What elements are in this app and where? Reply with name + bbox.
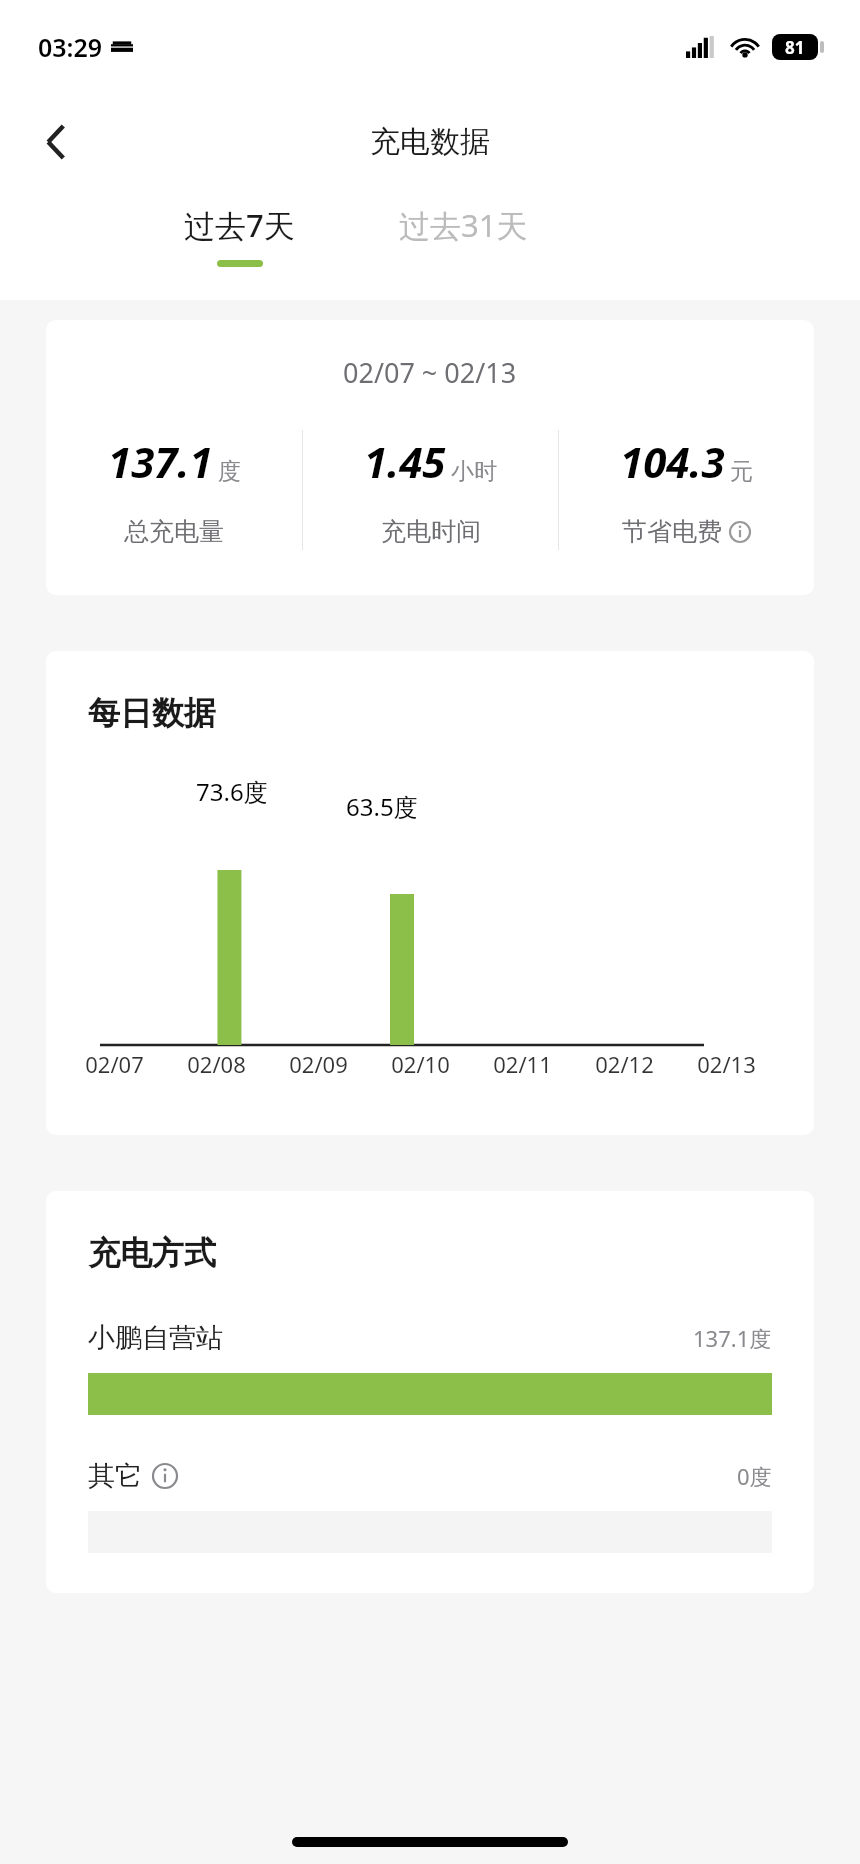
staticText: 137.1 — [108, 433, 213, 490]
staticText: 充电方式 — [88, 1233, 216, 1273]
button[interactable]: 02/07 ~ 02/13 — [46, 320, 814, 595]
staticText: 02/10 — [391, 1049, 450, 1079]
staticText: 每日数据 — [88, 693, 216, 733]
staticText: 02/07 — [85, 1049, 144, 1079]
staticText: 81 — [785, 36, 805, 59]
staticText: 02/12 — [595, 1049, 654, 1079]
staticText: 小时 — [451, 457, 497, 486]
staticText: 02/08 — [187, 1049, 246, 1079]
staticText: 73.6度 — [196, 775, 268, 808]
staticText: 小鹏自营站 — [88, 1321, 223, 1355]
staticText: 节省电费 — [622, 516, 722, 547]
staticText: 02/11 — [493, 1049, 552, 1079]
staticText: 总充电量 — [124, 516, 224, 547]
button[interactable]: Info — [152, 1463, 178, 1489]
staticText: 充电时间 — [381, 516, 481, 547]
staticText: 过去31天 — [399, 204, 528, 246]
button[interactable]: 过去7天 — [170, 204, 309, 267]
staticText: 02/07 ~ 02/13 — [343, 354, 517, 391]
staticText: 02/13 — [697, 1049, 756, 1079]
staticText: 1.45 — [364, 433, 446, 490]
staticText: 元 — [730, 457, 753, 486]
staticText: 137.1度 — [693, 1323, 772, 1353]
staticText: 03:29 — [38, 30, 103, 64]
staticText: 充电数据 — [370, 123, 490, 161]
staticText: 02/09 — [289, 1049, 348, 1079]
staticText: 其它 — [88, 1459, 142, 1493]
staticText: 度 — [218, 457, 241, 486]
button[interactable]: Back — [20, 106, 92, 178]
staticText: 过去7天 — [184, 204, 295, 246]
button[interactable]: 过去31天 — [385, 204, 542, 246]
staticText: 63.5度 — [346, 790, 418, 823]
staticText: 104.3 — [620, 433, 725, 490]
staticText: 0度 — [737, 1461, 772, 1491]
